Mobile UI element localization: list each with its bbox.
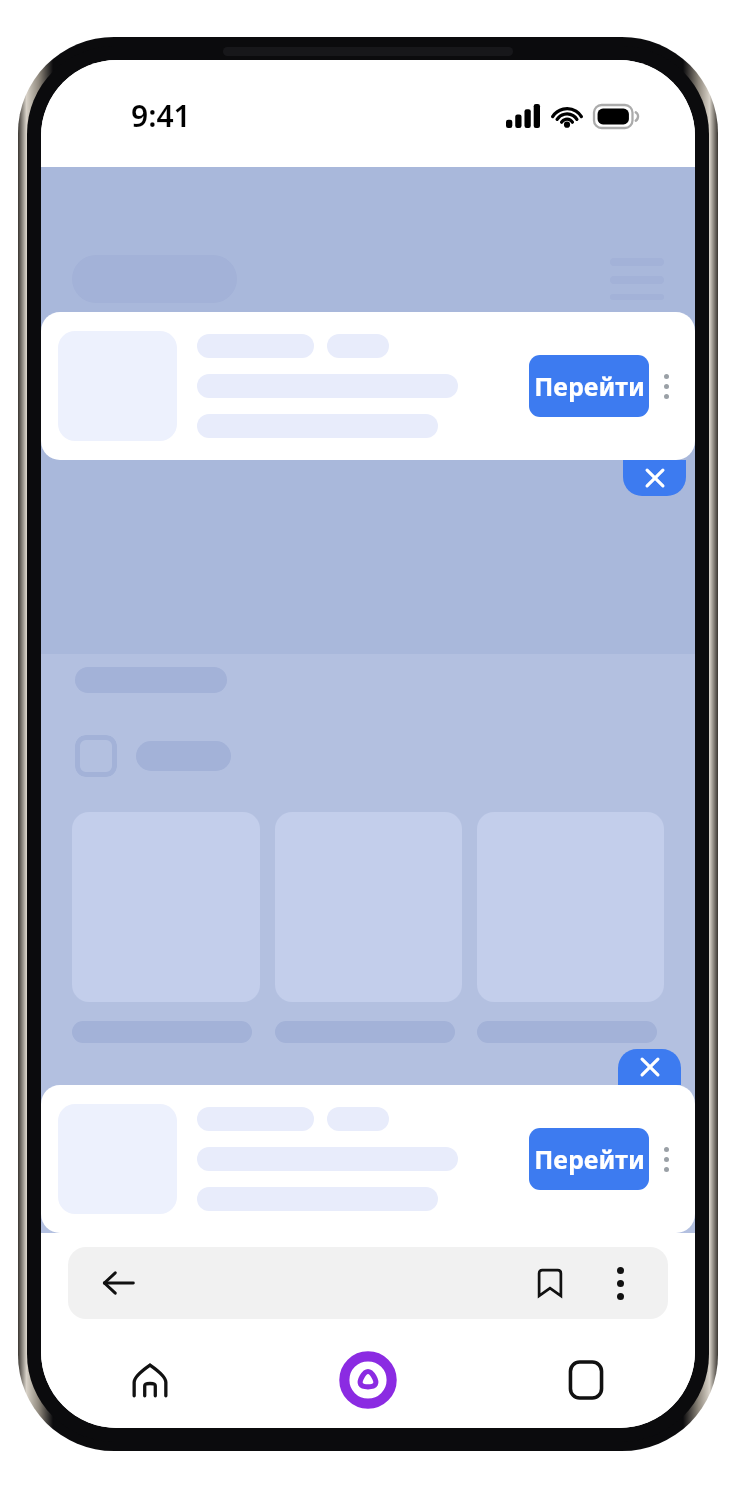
button[interactable]: Back: [90, 1255, 146, 1311]
button[interactable]: More options: [649, 1131, 683, 1187]
button[interactable]: Close: [623, 460, 686, 496]
button[interactable]: Bookmark: [522, 1255, 578, 1311]
staticText: Перейти: [534, 369, 645, 403]
button[interactable]: Перейти: [41, 1085, 695, 1233]
button[interactable]: Alice assistant: [259, 1332, 477, 1428]
button[interactable]: Close: [618, 1049, 681, 1085]
button[interactable]: More: [594, 1257, 646, 1309]
button[interactable]: Home: [41, 1332, 259, 1428]
button[interactable]: Перейти: [41, 312, 695, 460]
button[interactable]: Recents: [477, 1332, 695, 1428]
button[interactable]: Перейти: [529, 355, 649, 417]
staticText: Перейти: [534, 1142, 645, 1176]
button[interactable]: More options: [649, 358, 683, 414]
button[interactable]: Перейти: [529, 1128, 649, 1190]
staticText: 9:41: [131, 95, 191, 136]
